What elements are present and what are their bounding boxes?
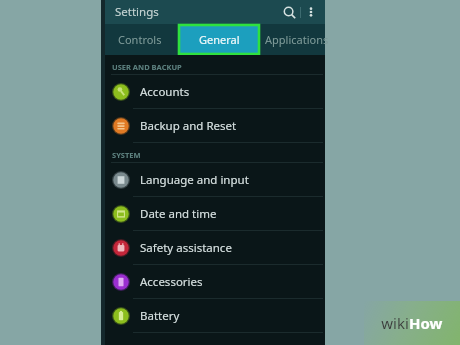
staticText: Accounts [140,84,190,100]
button[interactable]: General [179,24,259,55]
button[interactable]: Date and time [101,197,325,231]
button[interactable]: Safety assistance [101,231,325,265]
button[interactable]: Accounts [101,75,325,109]
staticText: How [409,313,443,333]
button[interactable]: Backup and Reset [101,109,325,143]
staticText: Battery [140,308,180,324]
staticText: SYSTEM [112,150,141,160]
staticText: General [199,32,240,47]
staticText: USER AND BACKUP [112,62,182,72]
staticText: Accessories [140,274,203,290]
button[interactable]: Applications [259,24,339,55]
button[interactable]: More options [301,2,321,22]
staticText: Date and time [140,206,217,222]
staticText: Safety assistance [140,240,232,256]
button[interactable]: Language and input [101,163,325,197]
button[interactable]: Accessories [101,265,325,299]
staticText: Settings [115,4,159,20]
staticText: Applications [265,32,329,47]
staticText: wiki [381,313,409,333]
staticText: Backup and Reset [140,118,237,134]
button[interactable]: Battery [101,299,325,333]
staticText: Language and input [140,172,249,188]
staticText: Controls [118,32,162,47]
button[interactable]: Search [278,1,300,23]
button[interactable]: Controls [101,24,179,55]
